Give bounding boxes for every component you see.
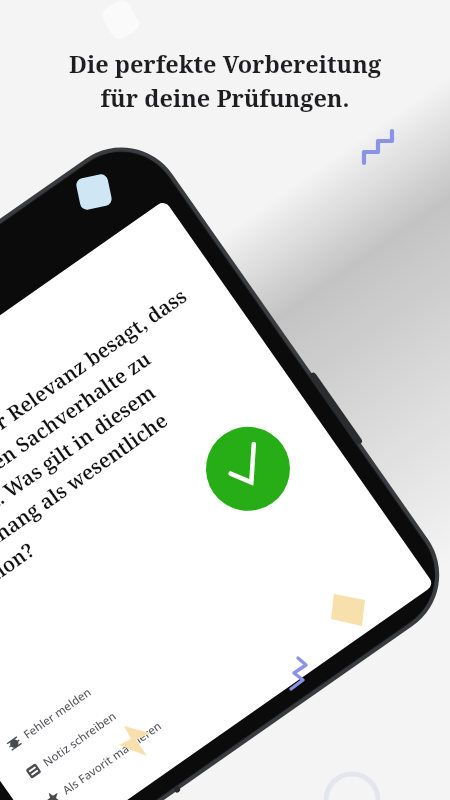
button[interactable]: Die perfekte Vorbereitung für deine Prüf… bbox=[0, 0, 450, 800]
